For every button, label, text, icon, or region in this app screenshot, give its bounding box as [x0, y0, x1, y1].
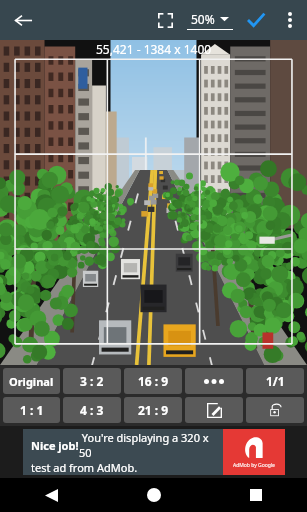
button[interactable]: Back [0, 478, 103, 512]
button[interactable]: 1 : 1 [3, 397, 60, 423]
button[interactable]: Back [6, 3, 40, 37]
staticText: 55,421 - 1384 x 1400 [96, 41, 212, 57]
button[interactable]: More options [275, 5, 305, 35]
button[interactable]: 3 : 2 [63, 368, 121, 394]
button[interactable]: Lock aspect ratio [246, 397, 304, 423]
button[interactable]: Recents [205, 478, 307, 512]
staticText: 21 : 9 [138, 402, 169, 418]
staticText: 4 : 3 [80, 402, 104, 418]
staticText: 1/1 [266, 373, 285, 389]
button[interactable]: 4 : 3 [63, 397, 121, 423]
staticText: 3 : 2 [80, 373, 104, 389]
button[interactable]: Home [103, 478, 205, 512]
button[interactable]: 1/1 [246, 368, 304, 394]
button[interactable]: 16 : 9 [124, 368, 182, 394]
button[interactable]: Done [237, 1, 275, 39]
staticText: 1 : 1 [20, 402, 44, 418]
button[interactable]: Edit crop [185, 397, 243, 423]
button[interactable]: 21 : 9 [124, 397, 182, 423]
button[interactable]: More ratios [185, 368, 243, 394]
staticText: AdMob by Google [233, 462, 275, 469]
button[interactable]: 50% [183, 2, 237, 38]
button[interactable]: Nice job! [23, 429, 285, 475]
button[interactable]: Original [3, 368, 60, 394]
staticText: 50% [191, 11, 215, 27]
staticText: You're displaying a 320 x 50 [79, 430, 223, 460]
staticText: 16 : 9 [138, 373, 169, 389]
button[interactable]: Crop [147, 2, 183, 38]
staticText: Original [9, 374, 54, 389]
staticText: Nice job! [31, 438, 79, 453]
staticText: test ad from AdMob. [31, 460, 138, 475]
